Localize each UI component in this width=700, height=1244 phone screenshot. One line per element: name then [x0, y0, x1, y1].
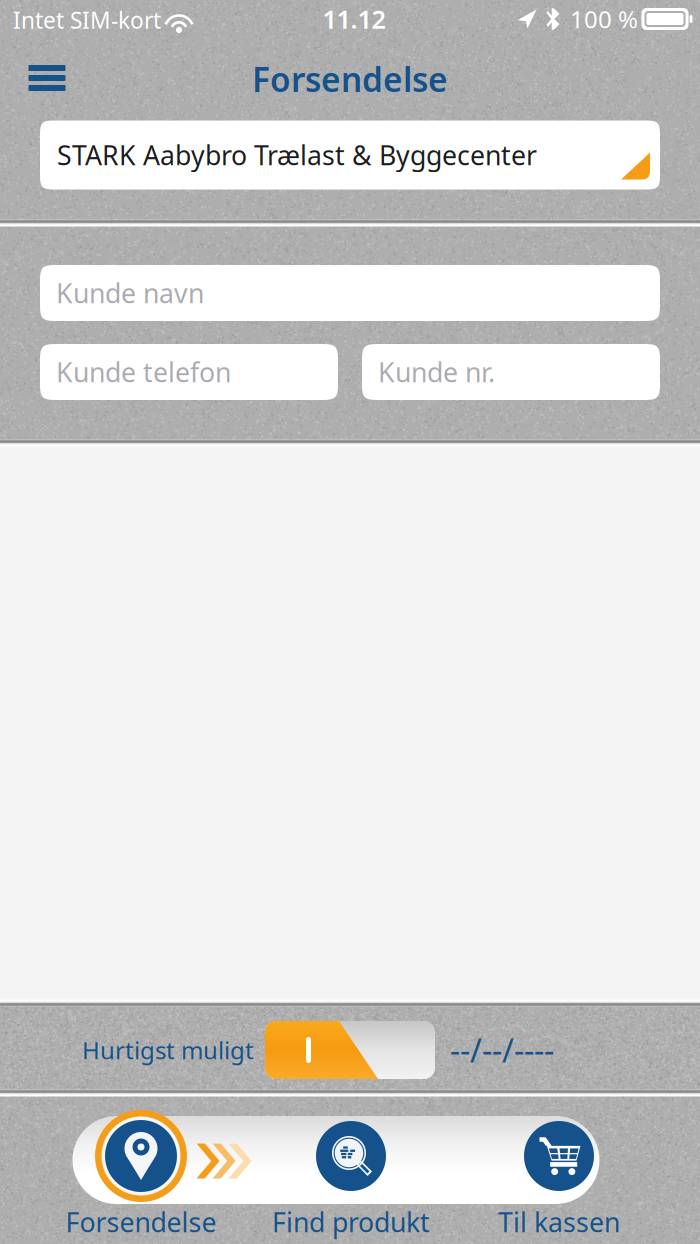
button[interactable]: Forsendelse	[36, 1110, 246, 1238]
staticText: STARK Aabybro Trælast & Byggecenter	[57, 137, 537, 173]
staticText: Forsendelse	[252, 57, 448, 101]
button[interactable]: Kunde navn	[40, 265, 660, 321]
button[interactable]: STARK Aabybro Trælast & Byggecenter	[40, 120, 660, 189]
staticText: Find produkt	[272, 1204, 430, 1240]
button[interactable]: Find produkt	[246, 1110, 456, 1238]
button[interactable]: Til kassen	[454, 1110, 664, 1238]
staticText: Kunde nr.	[378, 354, 495, 390]
staticText: 100 %	[570, 3, 638, 35]
button[interactable]: Kunde nr.	[362, 344, 660, 400]
staticText: Kunde telefon	[56, 354, 231, 390]
staticText: Til kassen	[498, 1204, 620, 1240]
staticText: --/--/----	[450, 1029, 554, 1071]
button[interactable]: Kunde telefon	[40, 344, 338, 400]
staticText: Intet SIM-kort	[13, 5, 161, 35]
staticText: Kunde navn	[56, 275, 204, 311]
button[interactable]: Menu	[2, 50, 92, 106]
staticText: Hurtigst muligt	[82, 1034, 254, 1066]
button[interactable]: Hurtigst muligt	[265, 1021, 435, 1079]
staticText: 11.12	[322, 2, 385, 36]
staticText: Forsendelse	[65, 1204, 216, 1240]
